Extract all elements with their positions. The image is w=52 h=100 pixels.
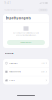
button[interactable]: This month <box>38 8 48 11</box>
staticText: Notebook events <box>9 71 21 73</box>
staticText: Low <box>41 62 44 64</box>
staticText: 9:41 <box>4 1 11 5</box>
staticText: Empathy congrats <box>6 16 31 20</box>
staticText: Our company's growth is measurable <box>13 32 39 34</box>
staticText: Projects <box>9 79 15 81</box>
button[interactable]: Notebook events <box>3 68 49 76</box>
staticText: 4.2 GB <box>40 71 44 73</box>
button[interactable]: See progress <box>7 40 45 45</box>
staticText: Visual Specify <box>5 53 14 54</box>
staticText: See progress <box>20 42 31 43</box>
button[interactable]: Activity options <box>3 59 49 67</box>
staticText: and your team made it happen. <box>16 34 36 36</box>
button[interactable]: Projects <box>3 76 49 84</box>
staticText: Activity options <box>9 62 18 64</box>
